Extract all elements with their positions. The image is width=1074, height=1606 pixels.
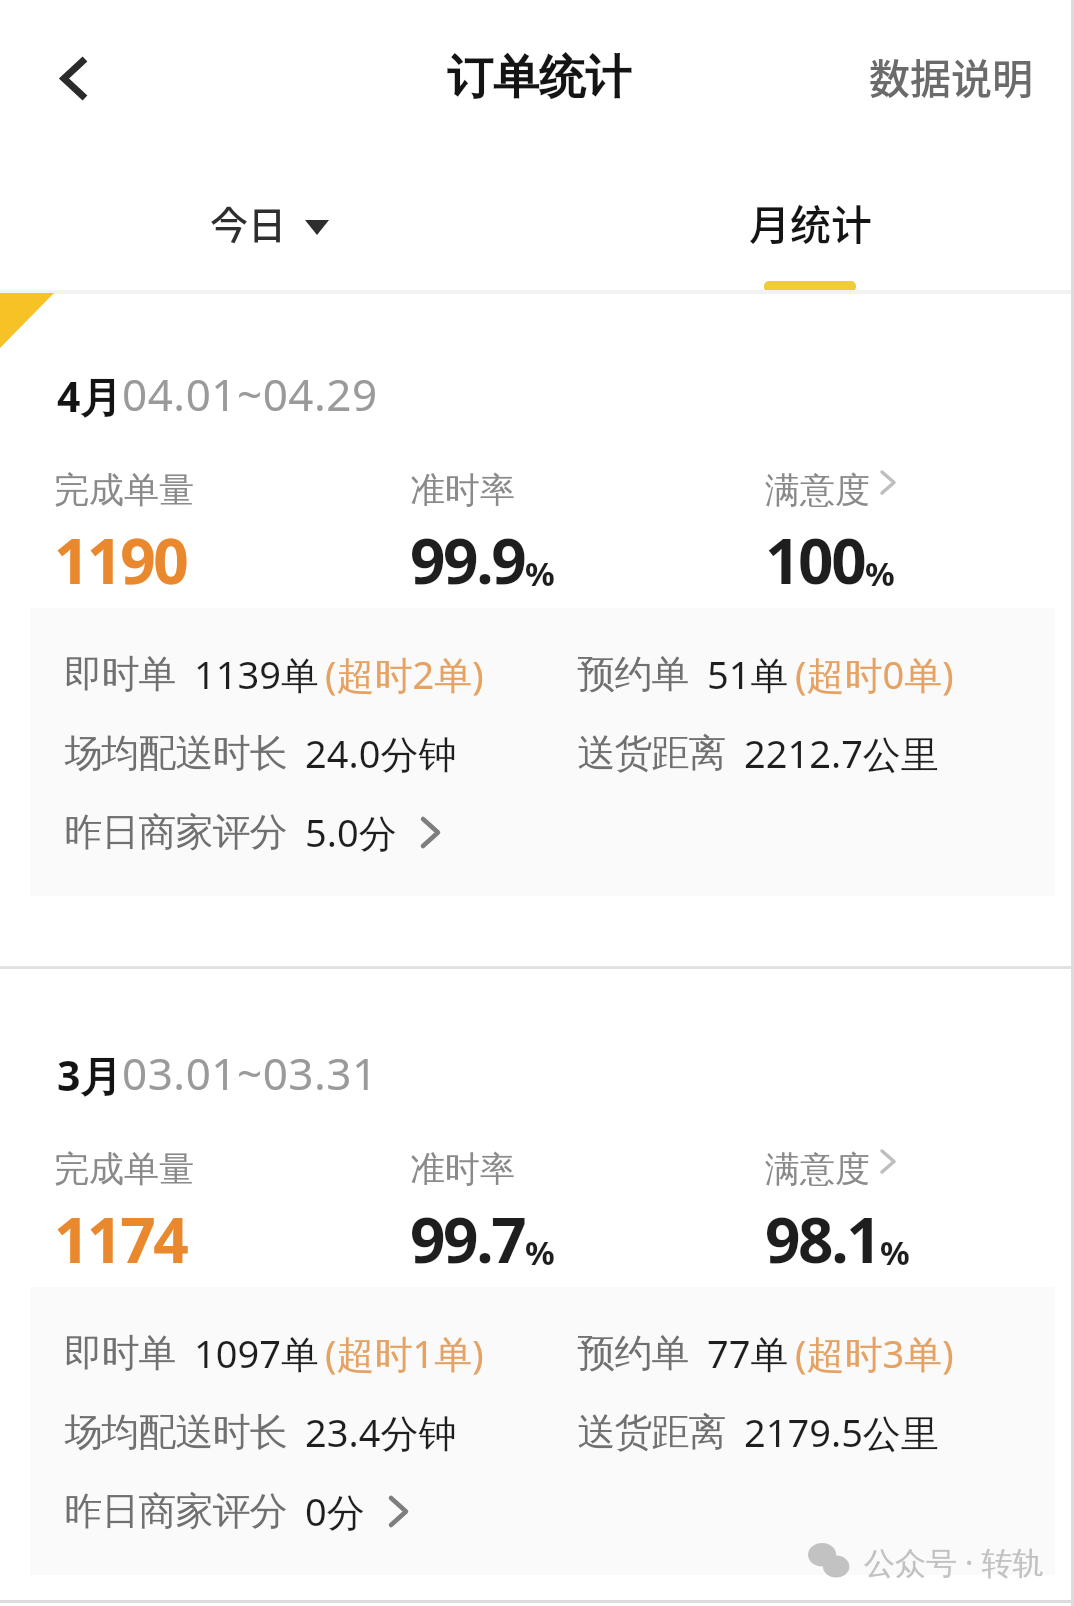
staticText: (超时2单)	[325, 648, 484, 700]
staticText: 完成单量	[54, 1147, 194, 1191]
staticText: 满意度	[765, 1147, 870, 1191]
staticText: 预约单	[578, 1329, 689, 1377]
staticText: 1097单	[194, 1327, 319, 1379]
staticText: 数据说明	[869, 46, 1033, 105]
staticText: 送货距离	[578, 1408, 726, 1456]
staticText: 77单	[707, 1327, 789, 1379]
staticText: 完成单量	[54, 468, 194, 512]
button[interactable]: 满意度	[765, 468, 895, 602]
staticText: 即时单	[65, 650, 176, 698]
staticText: (超时3单)	[795, 1327, 954, 1379]
staticText: 满意度	[765, 468, 870, 512]
staticText: %	[880, 1230, 910, 1275]
staticText: 04.01~04.29	[122, 364, 378, 424]
button[interactable]: 今日	[194, 181, 345, 264]
staticText: 准时率	[410, 1147, 515, 1191]
button[interactable]: 昨日商家评分	[65, 1485, 406, 1537]
staticText: 03.01~03.31	[122, 1043, 378, 1103]
staticText: 98.1	[765, 1197, 880, 1281]
staticText: 送货距离	[578, 729, 726, 777]
staticText: 公众号 · 转轨	[864, 1541, 1044, 1583]
staticText: 订单统计	[447, 49, 631, 107]
staticText: 99.7	[410, 1197, 525, 1281]
staticText: %	[865, 551, 895, 596]
button[interactable]: 月统计	[722, 176, 898, 298]
staticText: (超时0单)	[795, 648, 954, 700]
staticText: 5.0分	[305, 806, 397, 858]
staticText: 预约单	[578, 650, 689, 698]
staticText: %	[525, 1230, 555, 1275]
staticText: 即时单	[65, 1329, 176, 1377]
staticText: 场均配送时长	[65, 729, 287, 777]
staticText: 100	[765, 518, 865, 602]
staticText: 1139单	[194, 648, 319, 700]
staticText: 昨日商家评分	[65, 808, 287, 856]
staticText: %	[525, 551, 555, 596]
staticText: 51单	[707, 648, 789, 700]
staticText: 23.4分钟	[305, 1406, 457, 1458]
staticText: 1174	[54, 1197, 187, 1281]
staticText: 2179.5公里	[744, 1406, 939, 1458]
staticText: 0分	[305, 1485, 365, 1537]
button[interactable]: Back	[34, 44, 114, 112]
staticText: 月统计	[749, 192, 872, 251]
staticText: 3月	[57, 1047, 122, 1103]
staticText: 2212.7公里	[744, 727, 939, 779]
staticText: 24.0分钟	[305, 727, 457, 779]
staticText: 4月	[57, 368, 122, 424]
staticText: 1190	[54, 518, 187, 602]
staticText: 准时率	[410, 468, 515, 512]
staticText: 99.9	[410, 518, 525, 602]
button[interactable]: 数据说明	[851, 30, 1051, 121]
staticText: (超时1单)	[325, 1327, 484, 1379]
button[interactable]: 昨日商家评分	[65, 806, 438, 858]
button[interactable]: 满意度	[765, 1147, 910, 1281]
staticText: 场均配送时长	[65, 1408, 287, 1456]
staticText: 昨日商家评分	[65, 1487, 287, 1535]
staticText: 今日	[210, 195, 287, 250]
